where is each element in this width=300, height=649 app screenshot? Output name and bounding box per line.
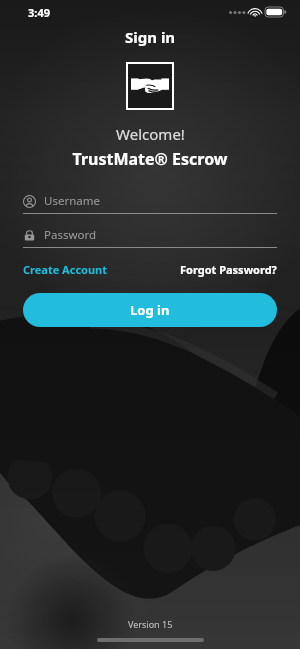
staticText: TrustMate® Escrow bbox=[72, 148, 228, 170]
button[interactable]: Password bbox=[23, 223, 277, 248]
button[interactable]: Log in bbox=[23, 293, 277, 327]
button[interactable]: Create Account bbox=[23, 259, 108, 280]
staticText: Log in bbox=[130, 301, 170, 319]
staticText: Username bbox=[44, 193, 100, 209]
staticText: Password bbox=[44, 227, 97, 243]
staticText: Create Account bbox=[23, 262, 108, 277]
staticText: Forgot Password? bbox=[180, 262, 277, 277]
staticText: Version 15 bbox=[128, 618, 173, 630]
staticText: Welcome! bbox=[116, 124, 185, 144]
staticText: 3:49 bbox=[28, 5, 50, 20]
button[interactable]: Username bbox=[23, 189, 277, 214]
staticText: Sign in bbox=[125, 27, 176, 47]
button[interactable]: Forgot Password? bbox=[180, 259, 277, 280]
